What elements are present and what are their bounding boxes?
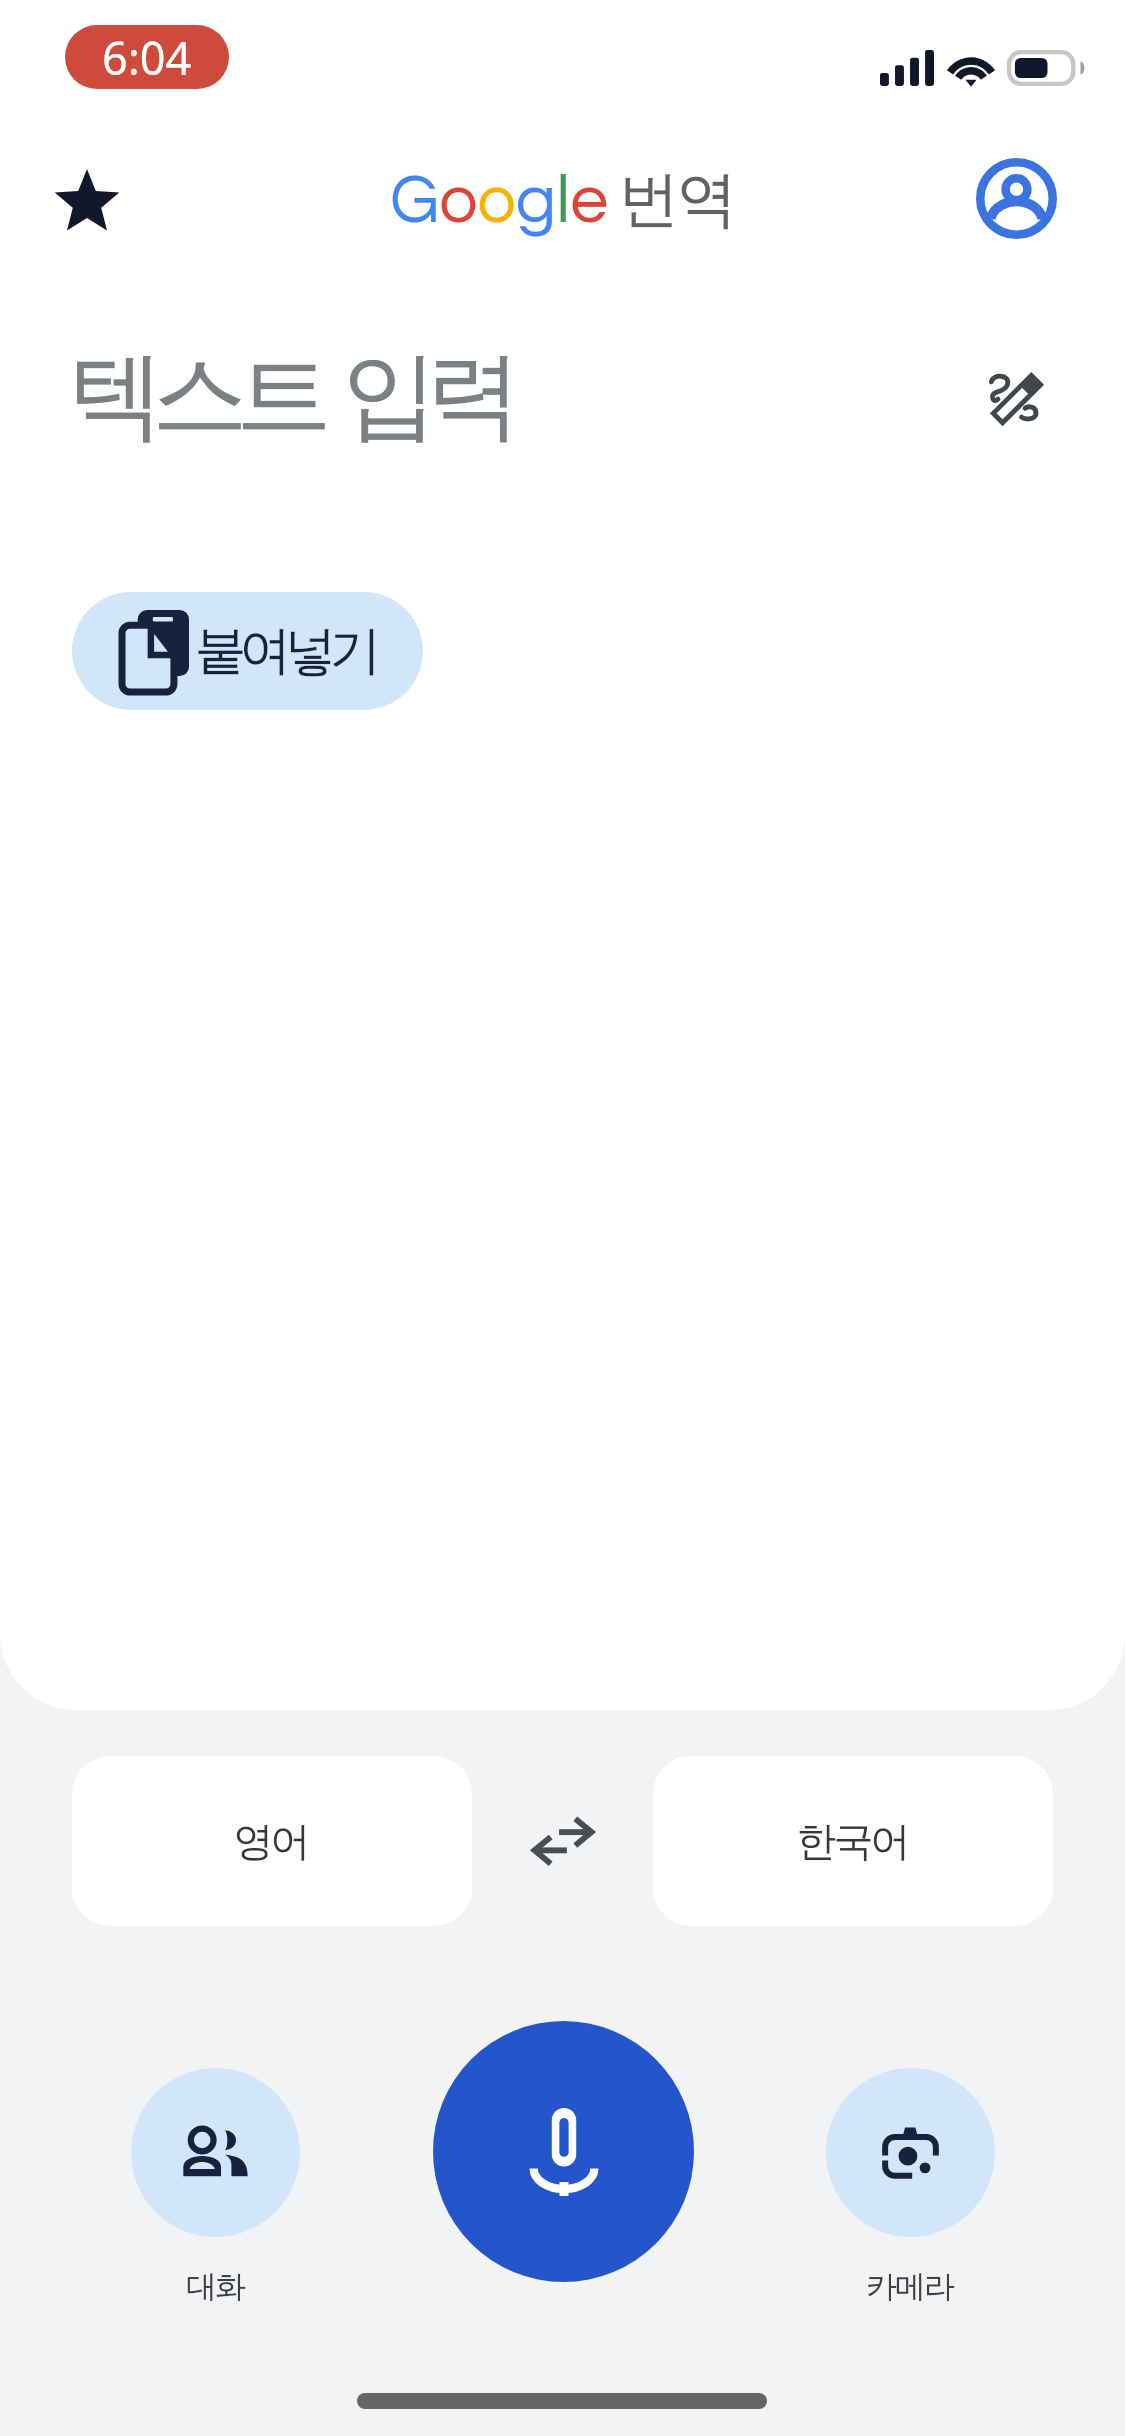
staticText: 한국어 [798, 1816, 909, 1866]
staticText: 6:04 [102, 27, 192, 88]
button[interactable]: Swap languages [472, 1756, 653, 1926]
staticText: 번역 [620, 161, 736, 238]
button[interactable]: 한국어 [653, 1756, 1053, 1926]
button[interactable]: 붙여넣기 [72, 592, 423, 710]
button[interactable]: Camera translate [826, 2068, 995, 2237]
staticText: Google [390, 166, 609, 236]
button[interactable]: Voice input [433, 2021, 694, 2282]
button[interactable]: Conversation [131, 2068, 300, 2237]
button[interactable]: Account [961, 143, 1071, 253]
button[interactable]: 영어 [72, 1756, 472, 1926]
staticText: 카메라 [867, 2267, 954, 2306]
button[interactable]: Handwriting input [956, 336, 1076, 456]
staticText: 영어 [235, 1816, 309, 1866]
button[interactable]: Saved translations [32, 146, 142, 256]
staticText: 입력 [348, 336, 516, 457]
staticText: 붙여넣기 [198, 618, 378, 684]
staticText: 텍스트 [74, 336, 326, 457]
staticText: 대화 [187, 2267, 245, 2306]
